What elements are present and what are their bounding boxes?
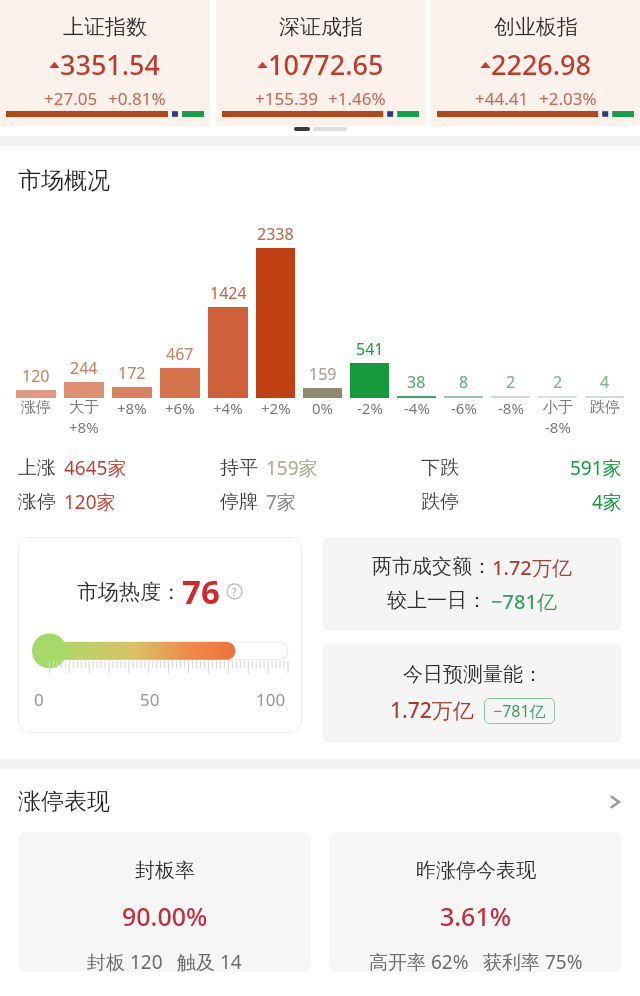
staticText: 8 [459,371,469,393]
staticText: 591家 [570,455,622,481]
staticText: 50 [140,688,160,711]
staticText: 4645家 [64,455,127,481]
staticText: -8% [498,398,524,418]
staticText: 获利率 75% [483,949,583,972]
staticText: +27.05 [44,87,98,110]
staticText: 76 [182,569,220,614]
staticText: 封板 120 [87,949,163,972]
button[interactable]: 昨涨停今表现 [329,832,622,972]
staticText: 541 [356,338,384,360]
staticText: -8% [545,417,571,437]
staticText: 跌停 [421,490,459,514]
staticText: 下跌 [421,456,459,480]
button[interactable]: 市场热度： [18,537,302,733]
staticText: +155.39 [255,87,318,110]
staticText: 1424 [210,282,247,304]
button[interactable]: 深证成指 [216,0,425,126]
staticText: 100 [256,688,286,711]
staticText: +8% [69,417,99,437]
staticText: +44.41 [475,87,529,110]
staticText: 159家 [266,455,318,481]
staticText: 0% [312,398,334,418]
staticText: 涨停 [18,490,56,514]
staticText: 市场概况 [18,166,110,195]
staticText: +1.46% [328,87,386,110]
staticText: 市场热度： [77,579,182,605]
staticText: 90.00% [122,899,208,933]
staticText: 120家 [64,489,116,515]
button[interactable]: 涨停表现 [18,787,622,816]
button[interactable]: 封板率 [18,832,311,972]
staticText: 停牌 [220,490,258,514]
other: 更多 [608,790,622,814]
staticText: 3351.54 [60,46,161,83]
staticText: 上涨 [18,456,56,480]
staticText: +8% [117,398,147,418]
staticText: +2.03% [539,87,597,110]
staticText: 较上一日： [387,588,487,613]
staticText: 0 [34,688,44,711]
button[interactable]: 上证指数 [0,0,210,126]
staticText: -2% [357,398,383,418]
staticText: 涨停 [21,398,51,417]
staticText: 上证指数 [63,14,147,40]
staticText: 172 [118,362,146,384]
staticText: 467 [166,343,194,365]
staticText: 2 [506,371,516,393]
staticText: 昨涨停今表现 [416,858,536,883]
staticText: 4 [600,371,610,393]
staticText: 触及 14 [177,949,242,972]
staticText: 封板率 [135,858,195,883]
staticText: 大于 [69,398,99,417]
staticText: 159 [309,363,337,385]
button[interactable]: 创业板指 [431,0,640,126]
button[interactable]: 今日预测量能： [322,643,622,743]
staticText: +6% [165,398,195,418]
staticText: 3.61% [440,899,512,933]
staticText: 10772.65 [268,46,384,83]
staticText: +0.81% [108,87,166,110]
staticText: 2 [553,371,563,393]
staticText: 两市成交额： [372,554,492,579]
button[interactable]: 说明 [226,583,243,600]
staticText: -6% [451,398,477,418]
staticText: 1.72万亿 [492,554,572,581]
staticText: 创业板指 [494,14,578,40]
staticText: 涨停表现 [18,787,110,816]
staticText: 244 [70,357,98,379]
staticText: 7家 [266,489,296,515]
staticText: 持平 [220,456,258,480]
staticText: 4家 [592,489,622,515]
staticText: 深证成指 [279,14,363,40]
staticText: 高开率 62% [369,949,469,972]
staticText: 今日预测量能： [403,662,543,687]
staticText: −781亿 [491,588,557,615]
staticText: 小于 [543,398,573,417]
staticText: 2226.98 [491,46,592,83]
staticText: 38 [407,371,426,393]
staticText: 跌停 [590,398,620,417]
staticText: +4% [213,398,243,418]
button[interactable]: 两市成交额： [322,537,622,631]
staticText: 2338 [257,223,294,245]
staticText: -4% [404,398,430,418]
staticText: ? [232,585,237,599]
staticText: −781亿 [493,700,546,722]
staticText: 120 [22,365,50,387]
staticText: +2% [261,398,291,418]
staticText: 1.72万亿 [390,696,474,725]
